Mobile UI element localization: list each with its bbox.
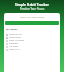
staticText: Sleep by 11 <box>9 48 21 51</box>
button[interactable]: Meditate <box>4 42 60 45</box>
staticText: My Habits <box>6 28 18 31</box>
staticText: Morning run <box>9 33 23 36</box>
staticText: Read 20 pages <box>9 39 25 42</box>
button[interactable] <box>5 21 59 25</box>
staticText: Meditate <box>9 42 19 45</box>
button[interactable]: Drink water <box>4 36 60 39</box>
button[interactable]: Sleep by 11 <box>4 48 60 51</box>
button[interactable]: No sugar <box>4 45 60 48</box>
staticText: Simple Habit Tracker <box>0 2 64 6</box>
staticText: Drink water <box>9 36 22 39</box>
button[interactable]: Morning run <box>4 33 60 36</box>
button[interactable]: Read 20 pages <box>4 39 60 42</box>
staticText: Practice Your Focus <box>0 7 64 11</box>
staticText: No sugar <box>9 45 19 48</box>
staticText: Track your daily habits <box>4 15 60 18</box>
